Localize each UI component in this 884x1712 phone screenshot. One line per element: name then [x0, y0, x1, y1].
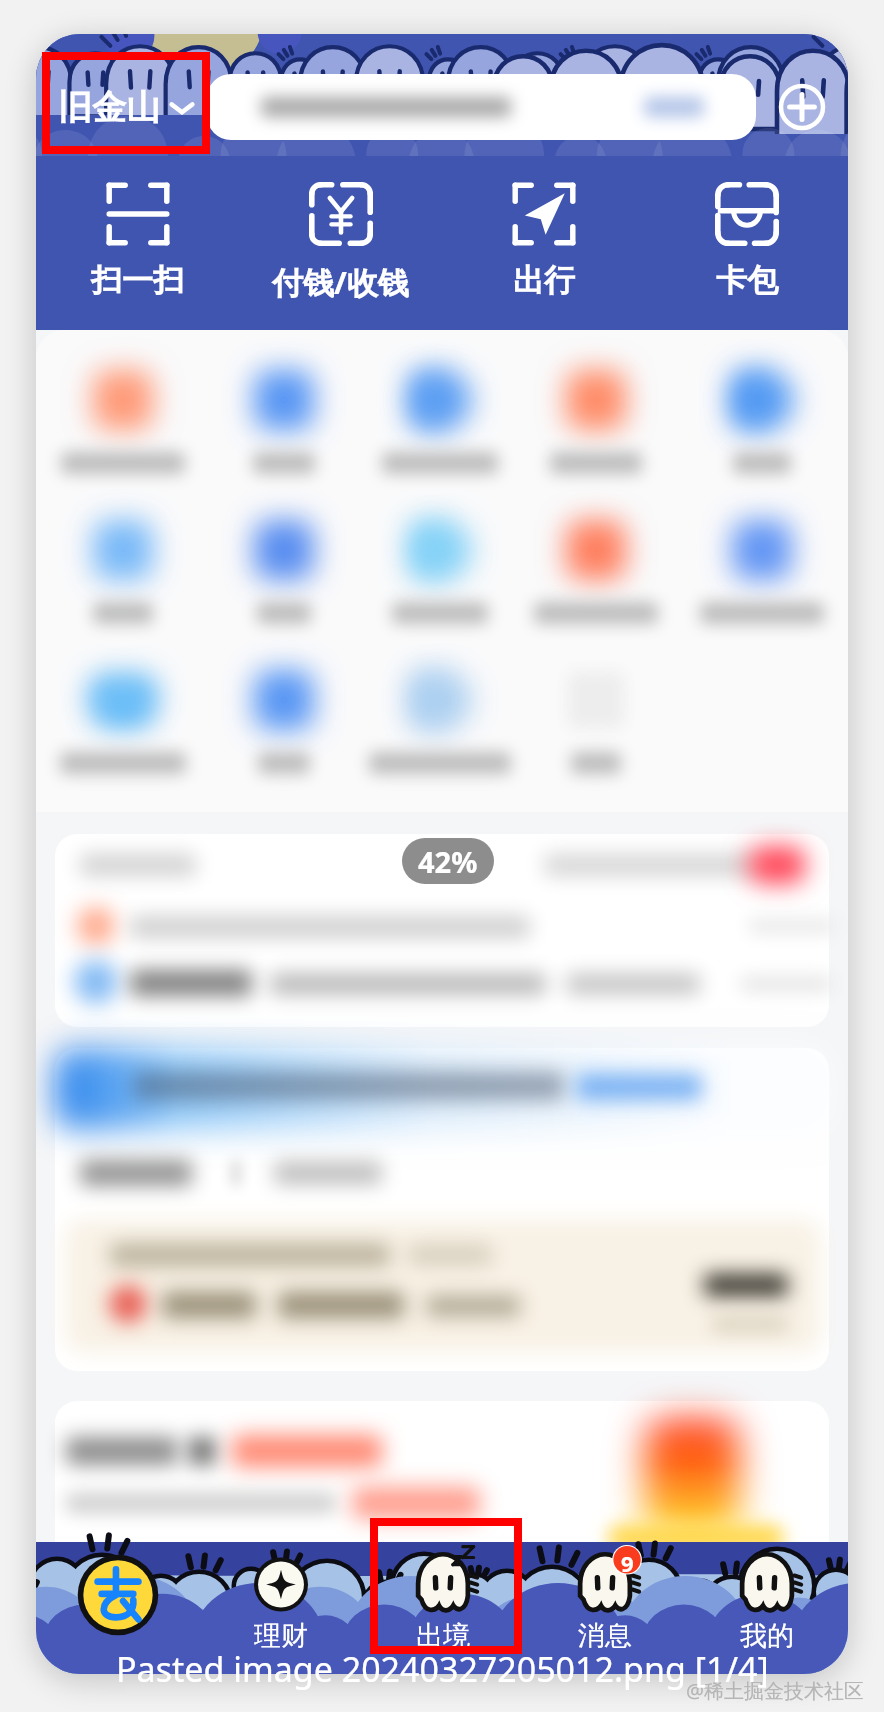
button[interactable] — [36, 648, 199, 798]
button[interactable] — [686, 498, 848, 648]
staticText: 9 — [621, 1548, 634, 1578]
button[interactable]: 扫一扫 — [36, 174, 239, 300]
button[interactable] — [36, 348, 199, 498]
staticText: @稀土掘金技术社区 — [686, 1677, 864, 1704]
button[interactable]: 付钱/收钱 — [239, 174, 442, 303]
button[interactable]: 卡包 — [645, 174, 848, 300]
staticText: 消息 — [578, 1619, 632, 1653]
button[interactable] — [686, 348, 848, 498]
button[interactable]: 出行 — [442, 174, 645, 300]
button[interactable] — [199, 648, 362, 798]
button[interactable] — [207, 74, 756, 140]
button[interactable]: 出境 — [362, 1542, 524, 1674]
button[interactable] — [362, 498, 524, 648]
staticText: 卡包 — [716, 261, 778, 300]
button[interactable] — [55, 1048, 829, 1371]
button[interactable] — [199, 348, 362, 498]
staticText: 出行 — [513, 261, 575, 300]
button[interactable]: 旧金山 — [36, 74, 207, 140]
button[interactable]: 理财 — [199, 1542, 362, 1674]
staticText: 42% — [418, 842, 478, 881]
staticText: 出境 — [416, 1619, 470, 1653]
button[interactable]: 9 — [524, 1542, 686, 1674]
button[interactable] — [55, 1401, 829, 1542]
staticText: 我的 — [740, 1619, 794, 1653]
button[interactable] — [524, 498, 686, 648]
button[interactable] — [362, 648, 524, 798]
staticText: 理财 — [254, 1619, 308, 1653]
button[interactable]: 首页 — [36, 1542, 199, 1674]
button[interactable]: 我的 — [686, 1542, 848, 1674]
button[interactable] — [524, 648, 686, 798]
staticText: 扫一扫 — [91, 261, 184, 300]
button[interactable] — [55, 834, 829, 1027]
staticText: 付钱/收钱 — [272, 261, 409, 303]
button[interactable] — [524, 348, 686, 498]
button[interactable] — [362, 348, 524, 498]
button[interactable] — [199, 498, 362, 648]
button[interactable] — [36, 498, 199, 648]
staticText: Pasted image 20240327205012.png [1/4] — [116, 1646, 769, 1692]
button[interactable]: Add — [756, 74, 848, 140]
staticText: 旧金山 — [58, 86, 160, 129]
